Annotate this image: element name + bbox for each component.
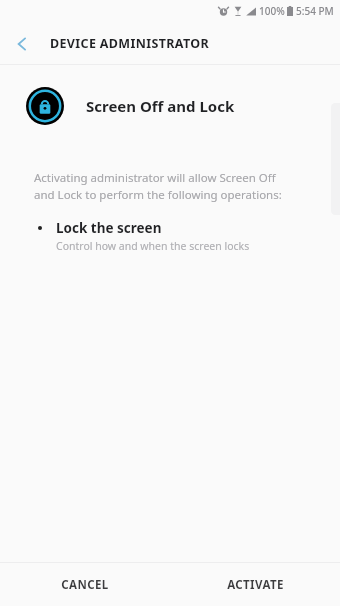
button[interactable]: CANCEL: [0, 563, 170, 606]
button[interactable]: ACTIVATE: [170, 563, 340, 606]
staticText: Activating administrator will allow Scre…: [34, 170, 282, 203]
staticText: Lock the screen: [56, 219, 162, 237]
staticText: 5:54 PM: [296, 4, 334, 18]
button[interactable]: Navigate up: [0, 22, 44, 65]
staticText: DEVICE ADMINISTRATOR: [50, 35, 210, 52]
staticText: CANCEL: [61, 577, 109, 593]
staticText: ACTIVATE: [227, 577, 284, 593]
staticText: Screen Off and Lock: [86, 96, 235, 116]
staticText: 100%: [259, 4, 285, 18]
staticText: Control how and when the screen locks: [56, 239, 250, 253]
